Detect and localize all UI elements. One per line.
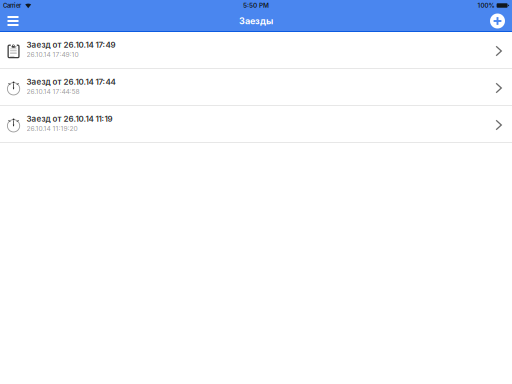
button[interactable]: Add [482, 11, 512, 31]
staticText: Заезд от 26.10.14 17:49 [26, 40, 115, 50]
staticText: Заезды [239, 15, 273, 26]
staticText: Заезд от 26.10.14 11:19 [26, 114, 112, 124]
button[interactable]: Заезд от 26.10.14 17:44 [0, 69, 512, 106]
staticText: Carrier [3, 2, 21, 9]
button[interactable]: Заезд от 26.10.14 17:49 [0, 32, 512, 69]
staticText: 100% [477, 2, 494, 9]
staticText: 5:50 PM [243, 2, 269, 9]
button[interactable]: Заезд от 26.10.14 11:19 [0, 106, 512, 143]
staticText: 26.10.14 17:44:58 [26, 88, 79, 96]
staticText: 26.10.14 17:49:10 [26, 51, 78, 59]
staticText: Заезд от 26.10.14 17:44 [26, 77, 115, 87]
staticText: 26.10.14 11:19:20 [26, 125, 77, 133]
button[interactable]: Menu [0, 11, 26, 31]
